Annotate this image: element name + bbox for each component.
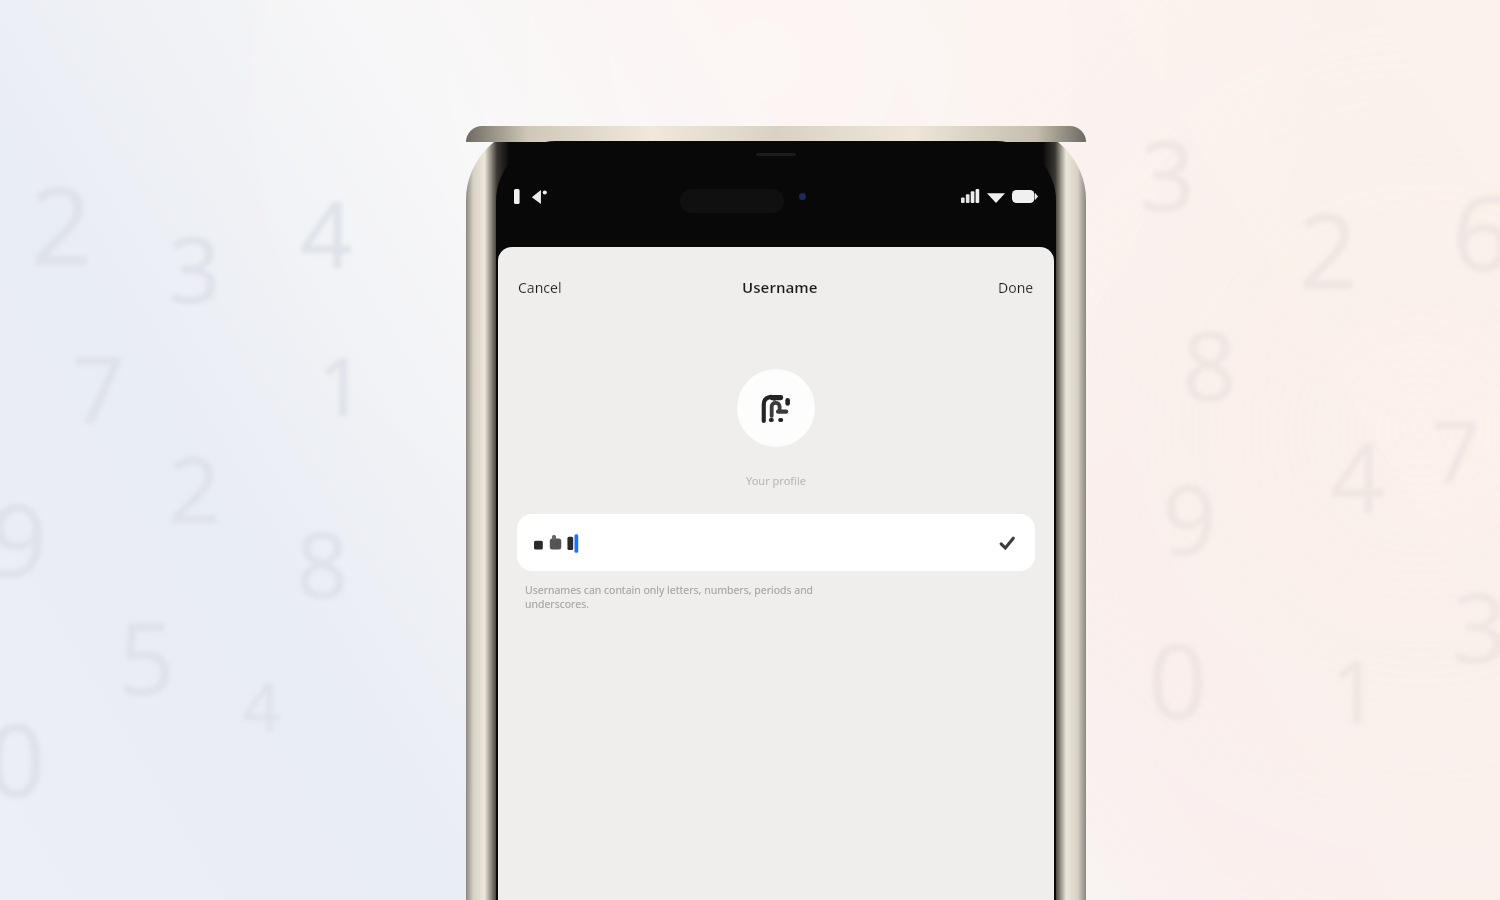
button[interactable]: Clear text — [996, 532, 1018, 554]
staticText: 8 — [1182, 298, 1237, 429]
staticText: underscores. — [525, 597, 590, 611]
staticText: 3 — [1140, 108, 1195, 239]
staticText: 4 — [242, 658, 281, 751]
staticText: 8 — [296, 500, 349, 625]
staticText: 2 — [168, 425, 221, 550]
button[interactable]: App icon — [737, 369, 815, 447]
staticText: Your profile — [746, 473, 806, 488]
staticText: 6 — [1452, 160, 1500, 302]
staticText: 3 — [1452, 560, 1500, 691]
button[interactable]: Cancel — [514, 274, 566, 301]
staticText: 7 — [1432, 392, 1481, 506]
staticText: 4 — [1330, 410, 1385, 541]
staticText: 1 — [318, 330, 364, 439]
staticText: Done — [998, 278, 1034, 297]
staticText: 3 — [168, 205, 221, 330]
staticText: 9 — [0, 470, 48, 606]
staticText: 9 — [1162, 452, 1217, 583]
button[interactable]: Clear text — [517, 514, 1035, 571]
button[interactable]: Done — [994, 274, 1038, 301]
staticText: Username — [742, 277, 818, 297]
staticText: Cancel — [518, 278, 562, 297]
staticText: 2 — [30, 150, 92, 297]
staticText: 0 — [0, 690, 46, 826]
staticText: Usernames can contain only letters, numb… — [525, 583, 814, 597]
staticText: 4 — [300, 170, 353, 295]
staticText: 5 — [118, 588, 176, 724]
staticText: 0 — [1148, 608, 1208, 750]
staticText: 2 — [1298, 178, 1358, 320]
